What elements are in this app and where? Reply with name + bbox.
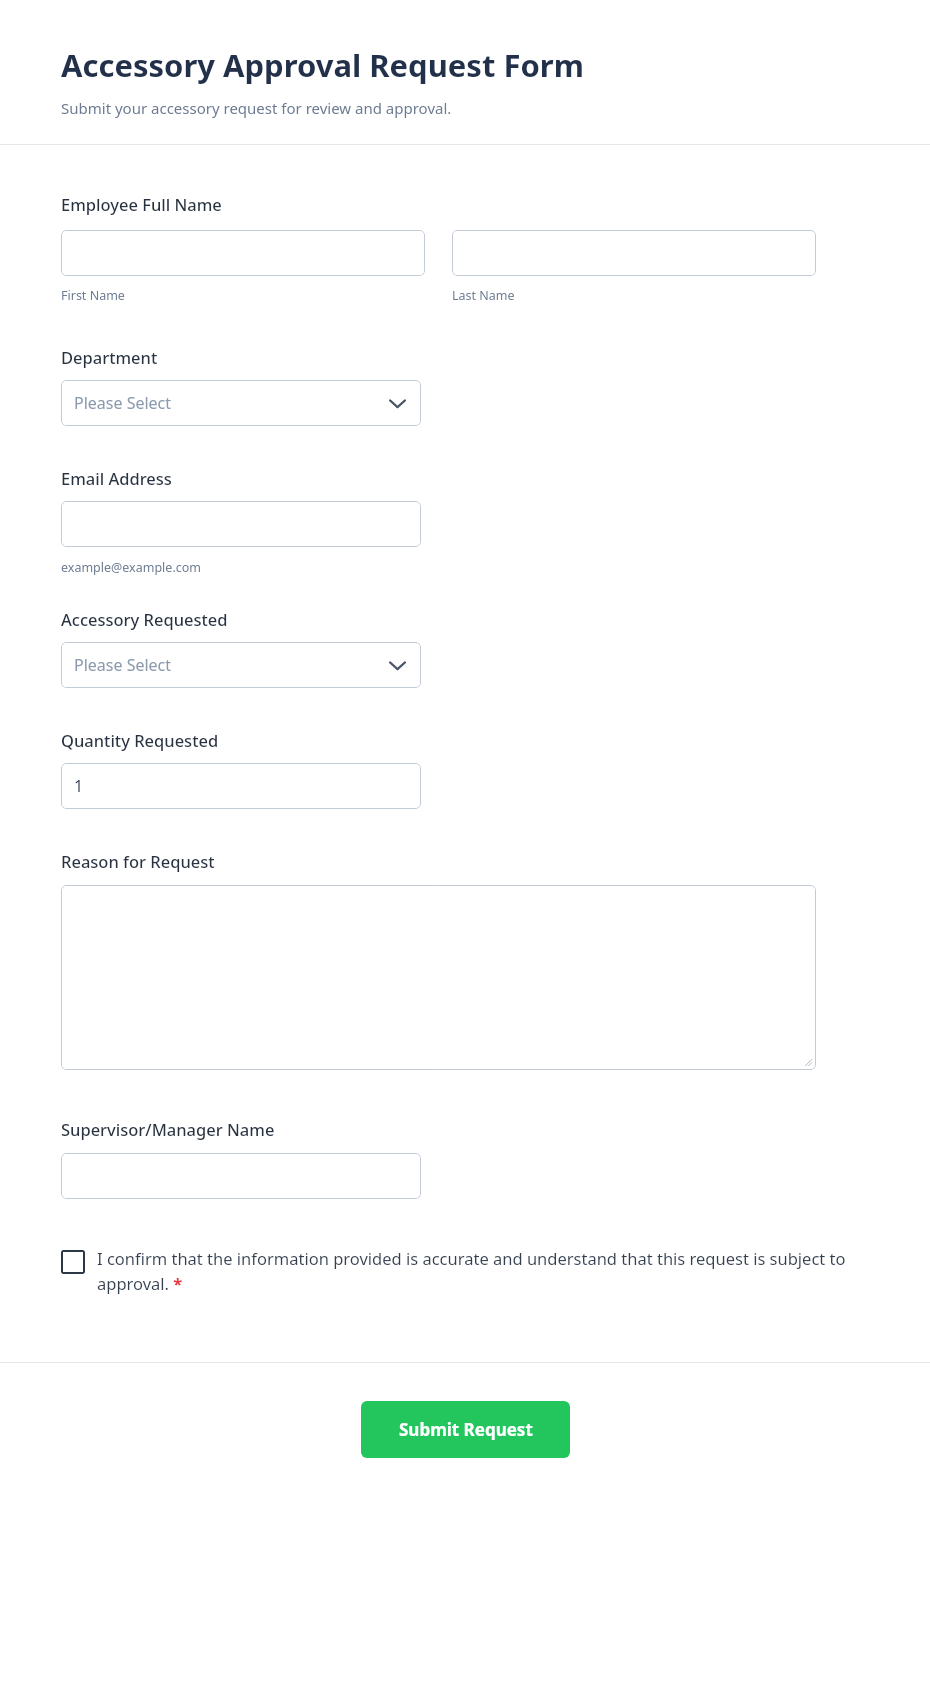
button[interactable]: Submit Request	[361, 1401, 570, 1458]
button[interactable]: I confirm that the information provided …	[61, 1247, 890, 1295]
staticText: Department	[61, 346, 158, 368]
button[interactable]: Accessory Requested	[61, 642, 421, 688]
button[interactable]: Reason for Request	[61, 885, 816, 1070]
staticText: Employee Full Name	[61, 193, 222, 215]
staticText: Last Name	[452, 287, 515, 304]
button[interactable]: Last Name	[452, 230, 816, 276]
button[interactable]: Supervisor/Manager Name	[61, 1153, 421, 1199]
staticText: Submit your accessory request for review…	[61, 98, 452, 118]
staticText: Email Address	[61, 467, 172, 489]
staticText: Supervisor/Manager Name	[61, 1118, 275, 1140]
staticText: example@example.com	[61, 559, 201, 576]
button[interactable]: Quantity Requested	[61, 763, 421, 809]
staticText: Submit Request	[399, 1418, 533, 1441]
staticText: Quantity Requested	[61, 729, 219, 751]
button[interactable]: First Name	[61, 230, 425, 276]
staticText: I confirm that the information provided …	[97, 1247, 890, 1295]
staticText: Accessory Requested	[61, 608, 228, 630]
staticText: First Name	[61, 287, 125, 304]
staticText: Please Select	[74, 392, 172, 414]
staticText: Reason for Request	[61, 850, 215, 872]
staticText: Please Select	[74, 654, 172, 676]
button[interactable]: Department	[61, 380, 421, 426]
button[interactable]: Email Address	[61, 501, 421, 547]
staticText: 1	[74, 775, 84, 797]
staticText: Accessory Approval Request Form	[61, 44, 584, 86]
